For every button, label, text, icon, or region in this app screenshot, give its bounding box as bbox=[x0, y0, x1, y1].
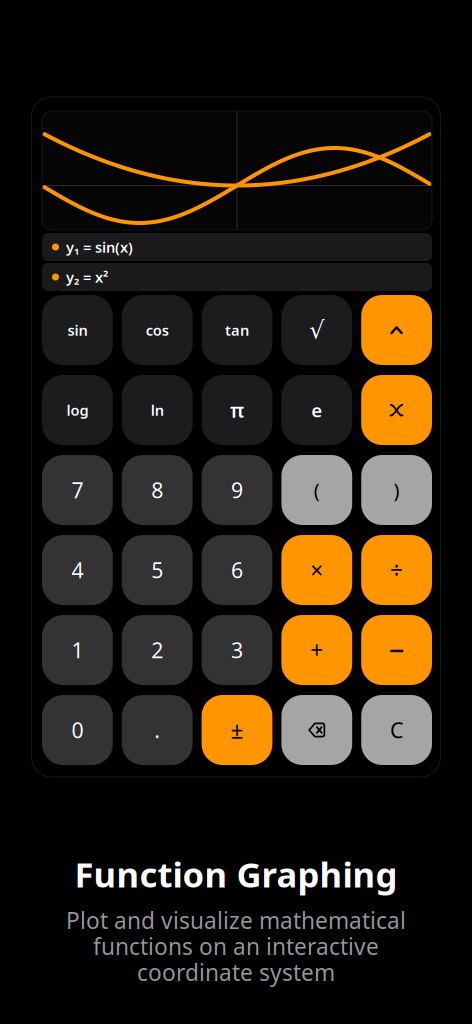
staticText: 4 bbox=[71, 556, 83, 584]
staticText: 9 bbox=[231, 476, 243, 504]
staticText: Plot and visualize mathematical bbox=[66, 905, 406, 935]
staticText: y₂ = x² bbox=[66, 267, 108, 287]
staticText: log bbox=[66, 400, 88, 420]
staticText: 3 bbox=[231, 636, 243, 664]
staticText: . bbox=[154, 716, 160, 744]
staticText: × bbox=[310, 555, 323, 585]
button[interactable]: 1 bbox=[42, 615, 113, 685]
button[interactable]: 0 bbox=[42, 695, 113, 765]
staticText: C bbox=[390, 716, 403, 744]
button[interactable]: 5 bbox=[122, 535, 193, 605]
button[interactable]: 6 bbox=[202, 535, 272, 605]
staticText: functions on an interactive bbox=[93, 931, 379, 961]
staticText: coordinate system bbox=[137, 957, 335, 987]
button[interactable]: 3 bbox=[202, 615, 272, 685]
staticText: ( bbox=[314, 477, 320, 503]
staticText: tan bbox=[225, 320, 249, 340]
button[interactable]: 4 bbox=[42, 535, 113, 605]
staticText: − bbox=[389, 632, 404, 668]
button[interactable]: √ bbox=[281, 295, 352, 365]
staticText: ) bbox=[394, 477, 400, 503]
button[interactable]: e bbox=[281, 375, 352, 445]
button[interactable]: 2 bbox=[122, 615, 193, 685]
staticText: Function Graphing bbox=[74, 851, 397, 897]
staticText: 6 bbox=[231, 556, 243, 584]
button[interactable]: ( bbox=[281, 455, 352, 525]
staticText: e bbox=[311, 398, 322, 422]
button[interactable]: Power bbox=[361, 295, 432, 365]
button[interactable]: ln bbox=[122, 375, 193, 445]
button[interactable]: − bbox=[361, 615, 432, 685]
staticText: 2 bbox=[151, 636, 163, 664]
staticText: 1 bbox=[71, 636, 83, 664]
staticText: y₁ = sin(x) bbox=[66, 237, 133, 257]
button[interactable]: cos bbox=[122, 295, 193, 365]
staticText: 7 bbox=[71, 476, 83, 504]
button[interactable]: Variable x bbox=[361, 375, 432, 445]
button[interactable]: C bbox=[361, 695, 432, 765]
button[interactable]: sin bbox=[42, 295, 113, 365]
staticText: 8 bbox=[151, 476, 163, 504]
button[interactable]: tan bbox=[202, 295, 272, 365]
staticText: ln bbox=[151, 400, 164, 420]
button[interactable]: Delete bbox=[281, 695, 352, 765]
button[interactable]: ± bbox=[202, 695, 272, 765]
button[interactable]: ) bbox=[361, 455, 432, 525]
staticText: 5 bbox=[151, 556, 163, 584]
staticText: sin bbox=[67, 320, 87, 340]
button[interactable]: . bbox=[122, 695, 193, 765]
staticText: √ bbox=[309, 316, 324, 344]
button[interactable]: + bbox=[281, 615, 352, 685]
button[interactable]: ÷ bbox=[361, 535, 432, 605]
staticText: + bbox=[310, 635, 323, 665]
button[interactable]: 9 bbox=[202, 455, 272, 525]
button[interactable]: × bbox=[281, 535, 352, 605]
button[interactable]: 8 bbox=[122, 455, 193, 525]
button[interactable]: 7 bbox=[42, 455, 113, 525]
staticText: ÷ bbox=[390, 555, 403, 585]
staticText: cos bbox=[146, 320, 169, 340]
staticText: ± bbox=[230, 715, 243, 745]
button[interactable]: π bbox=[202, 375, 272, 445]
staticText: π bbox=[230, 397, 244, 423]
staticText: 0 bbox=[71, 716, 83, 744]
button[interactable]: log bbox=[42, 375, 113, 445]
